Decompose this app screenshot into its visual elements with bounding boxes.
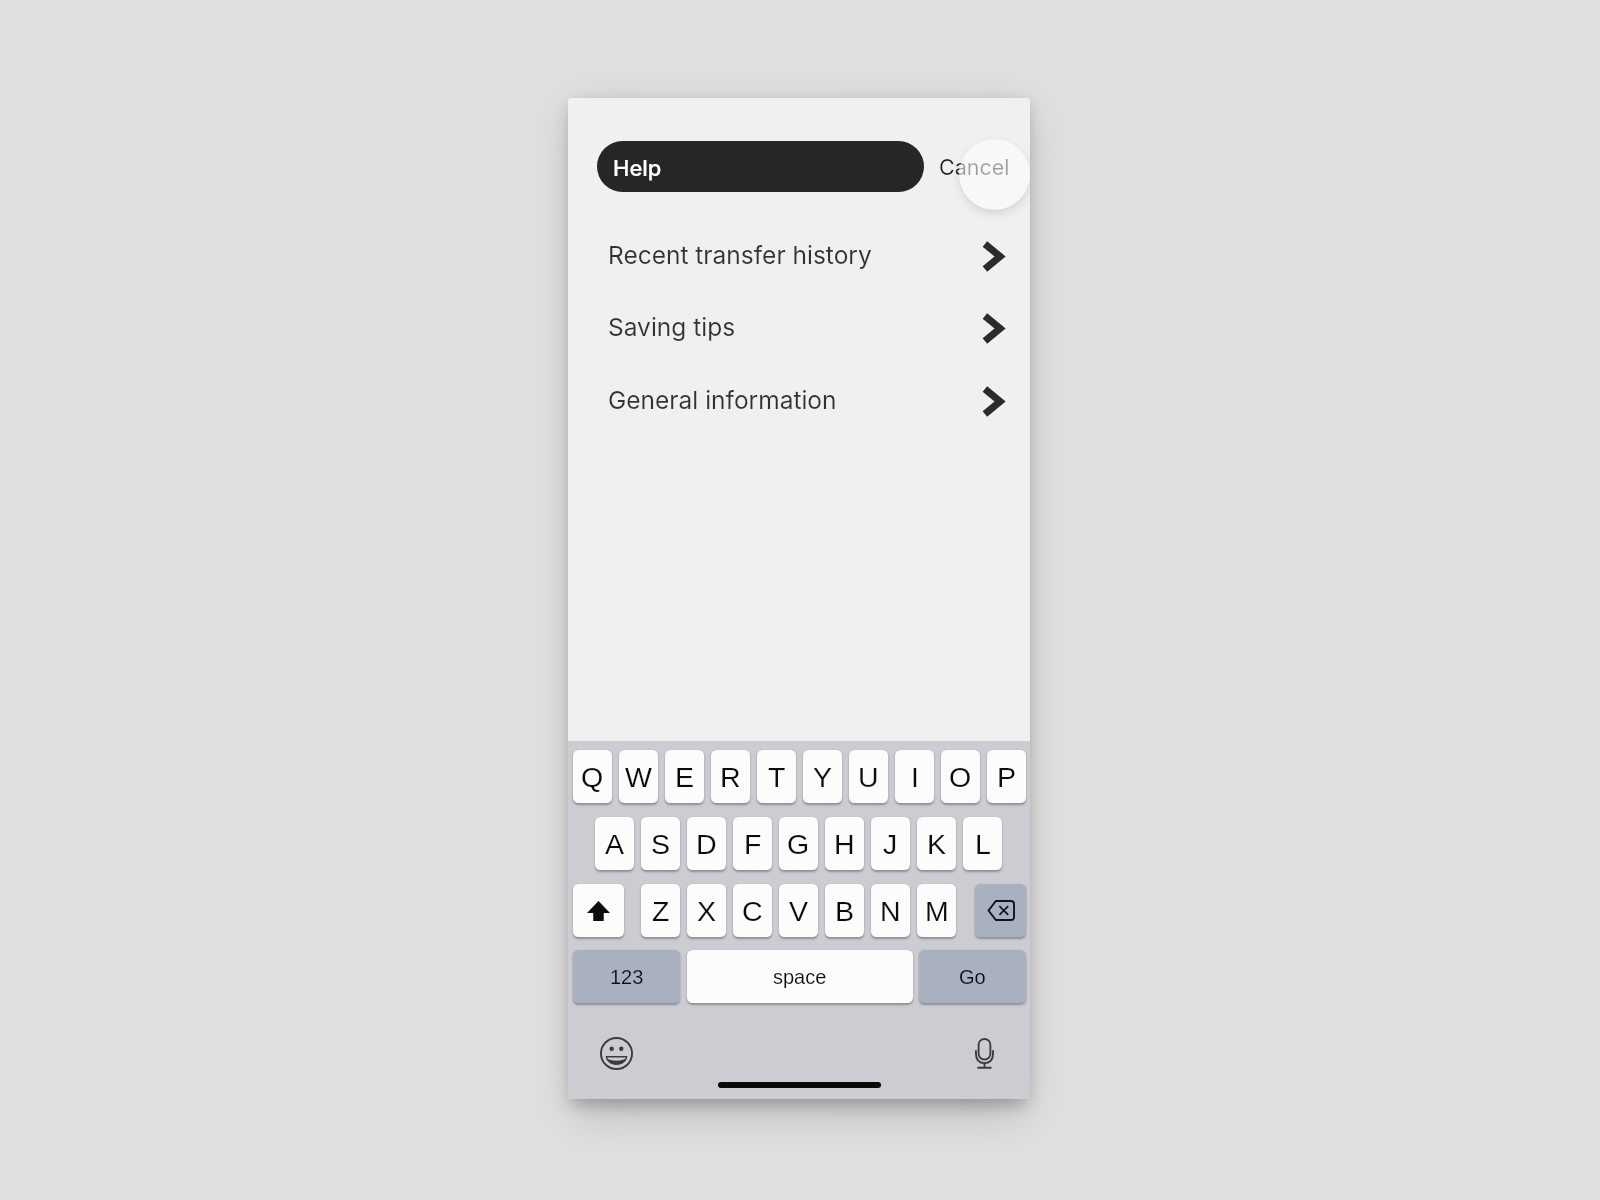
staticText: F — [744, 828, 762, 860]
button[interactable]: G — [779, 817, 818, 870]
button[interactable]: Shift — [573, 884, 624, 937]
staticText: K — [927, 828, 947, 860]
button[interactable]: Z — [641, 884, 680, 937]
staticText: Cancel — [939, 154, 1010, 180]
button[interactable]: Q — [573, 750, 612, 803]
staticText: Q — [581, 761, 604, 793]
button[interactable]: Backspace — [975, 884, 1026, 937]
button[interactable]: space — [687, 950, 913, 1003]
staticText: A — [605, 828, 625, 860]
button[interactable]: Go — [919, 950, 1026, 1003]
button[interactable]: X — [687, 884, 726, 937]
button[interactable]: E — [665, 750, 704, 803]
staticText: I — [911, 761, 919, 793]
button[interactable]: D — [687, 817, 726, 870]
button[interactable]: P — [987, 750, 1026, 803]
button[interactable]: L — [963, 817, 1002, 870]
staticText: H — [834, 828, 855, 860]
staticText: P — [997, 761, 1017, 793]
button[interactable]: M — [917, 884, 956, 937]
staticText: L — [975, 828, 991, 860]
staticText: Z — [652, 895, 670, 927]
staticText: Saving tips — [608, 312, 736, 342]
staticText: D — [696, 828, 717, 860]
button[interactable]: V — [779, 884, 818, 937]
button[interactable]: J — [871, 817, 910, 870]
staticText: S — [651, 828, 671, 860]
staticText: R — [720, 761, 741, 793]
button[interactable]: W — [619, 750, 658, 803]
button[interactable]: 123 — [573, 950, 680, 1003]
staticText: U — [858, 761, 879, 793]
button[interactable]: S — [641, 817, 680, 870]
staticText: Go — [959, 966, 986, 988]
button[interactable]: Cancel — [934, 141, 1014, 192]
staticText: N — [880, 895, 901, 927]
staticText: Y — [813, 761, 833, 793]
button[interactable]: F — [733, 817, 772, 870]
button[interactable]: A — [595, 817, 634, 870]
staticText: Recent transfer history — [608, 240, 872, 270]
button[interactable]: Help — [597, 141, 924, 192]
button[interactable]: B — [825, 884, 864, 937]
button[interactable]: N — [871, 884, 910, 937]
button[interactable]: H — [825, 817, 864, 870]
staticText: M — [925, 895, 949, 927]
button[interactable]: Close — [959, 139, 1030, 210]
button[interactable]: U — [849, 750, 888, 803]
button[interactable]: Saving tips — [568, 292, 1030, 362]
button[interactable]: Recent transfer history — [568, 220, 1030, 290]
staticText: Help — [613, 155, 662, 182]
staticText: B — [835, 895, 855, 927]
staticText: X — [697, 895, 717, 927]
button[interactable]: Voice input — [967, 1036, 1001, 1070]
staticText: G — [787, 828, 810, 860]
staticText: 123 — [610, 966, 644, 988]
staticText: General information — [608, 385, 837, 415]
button[interactable]: C — [733, 884, 772, 937]
button[interactable]: Emoji keyboard — [599, 1036, 633, 1070]
staticText: V — [789, 895, 809, 927]
staticText: O — [949, 761, 972, 793]
button[interactable]: General information — [568, 365, 1030, 435]
staticText: E — [675, 761, 695, 793]
staticText: space — [773, 966, 827, 988]
button[interactable]: K — [917, 817, 956, 870]
staticText: J — [883, 828, 898, 860]
button[interactable]: Y — [803, 750, 842, 803]
button[interactable]: I — [895, 750, 934, 803]
button[interactable]: T — [757, 750, 796, 803]
staticText: W — [625, 761, 652, 793]
staticText: C — [742, 895, 763, 927]
button[interactable]: R — [711, 750, 750, 803]
button[interactable]: O — [941, 750, 980, 803]
staticText: T — [768, 761, 786, 793]
